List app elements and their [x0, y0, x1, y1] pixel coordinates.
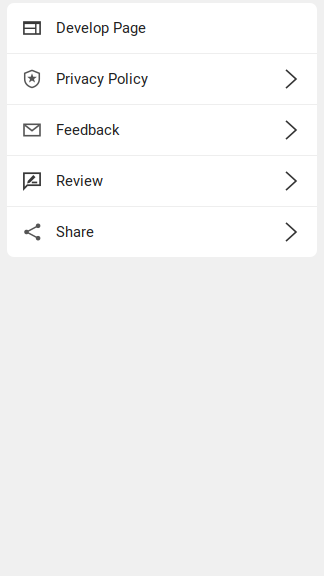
button[interactable]: Share: [7, 207, 317, 257]
staticText: Privacy Policy: [56, 70, 148, 88]
button[interactable]: Develop Page: [7, 3, 317, 53]
button[interactable]: Feedback: [7, 105, 317, 155]
staticText: Review: [56, 172, 103, 190]
staticText: Share: [56, 223, 94, 241]
button[interactable]: Privacy Policy: [7, 54, 317, 104]
staticText: Develop Page: [56, 19, 146, 37]
staticText: Feedback: [56, 121, 119, 139]
button[interactable]: Review: [7, 156, 317, 206]
